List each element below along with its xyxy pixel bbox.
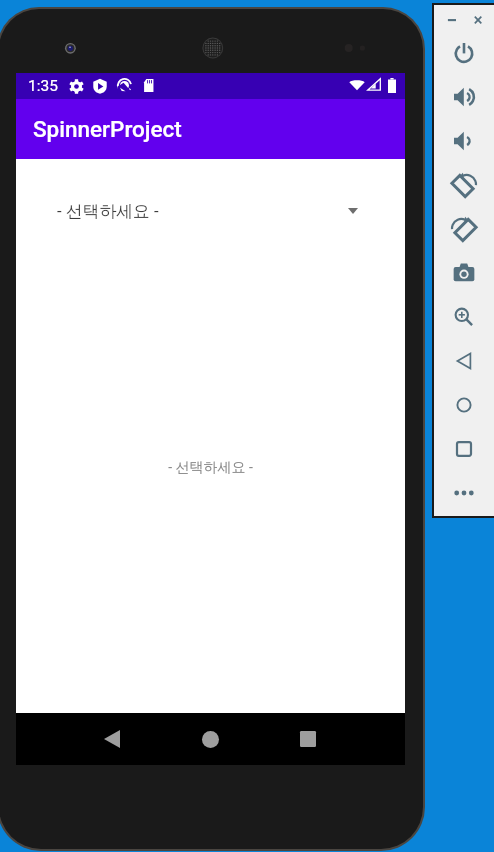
button[interactable]: Home [448,389,480,421]
button[interactable]: Zoom [448,301,480,333]
button[interactable]: Rotate left [448,169,480,201]
button[interactable]: More [448,477,480,509]
button[interactable]: Rotate right [448,213,480,245]
button[interactable]: Home [178,713,242,765]
button[interactable]: Back [80,713,144,765]
button[interactable]: Volume up [448,81,480,113]
button[interactable]: Overview [448,433,480,465]
button[interactable]: Back [448,345,480,377]
staticText: - 선택하세요 - [168,459,253,477]
staticText: - 선택하세요 - [57,201,159,222]
button[interactable]: Take screenshot [448,257,480,289]
button[interactable]: - 선택하세요 - [16,159,405,263]
staticText: SpinnerProject [33,116,182,142]
button[interactable]: Power [448,37,480,69]
button[interactable]: Close [468,8,492,32]
staticText: 1:35 [28,77,58,95]
button[interactable]: Recents [276,713,340,765]
button[interactable]: Minimise [444,8,468,32]
button[interactable]: Volume down [448,125,480,157]
